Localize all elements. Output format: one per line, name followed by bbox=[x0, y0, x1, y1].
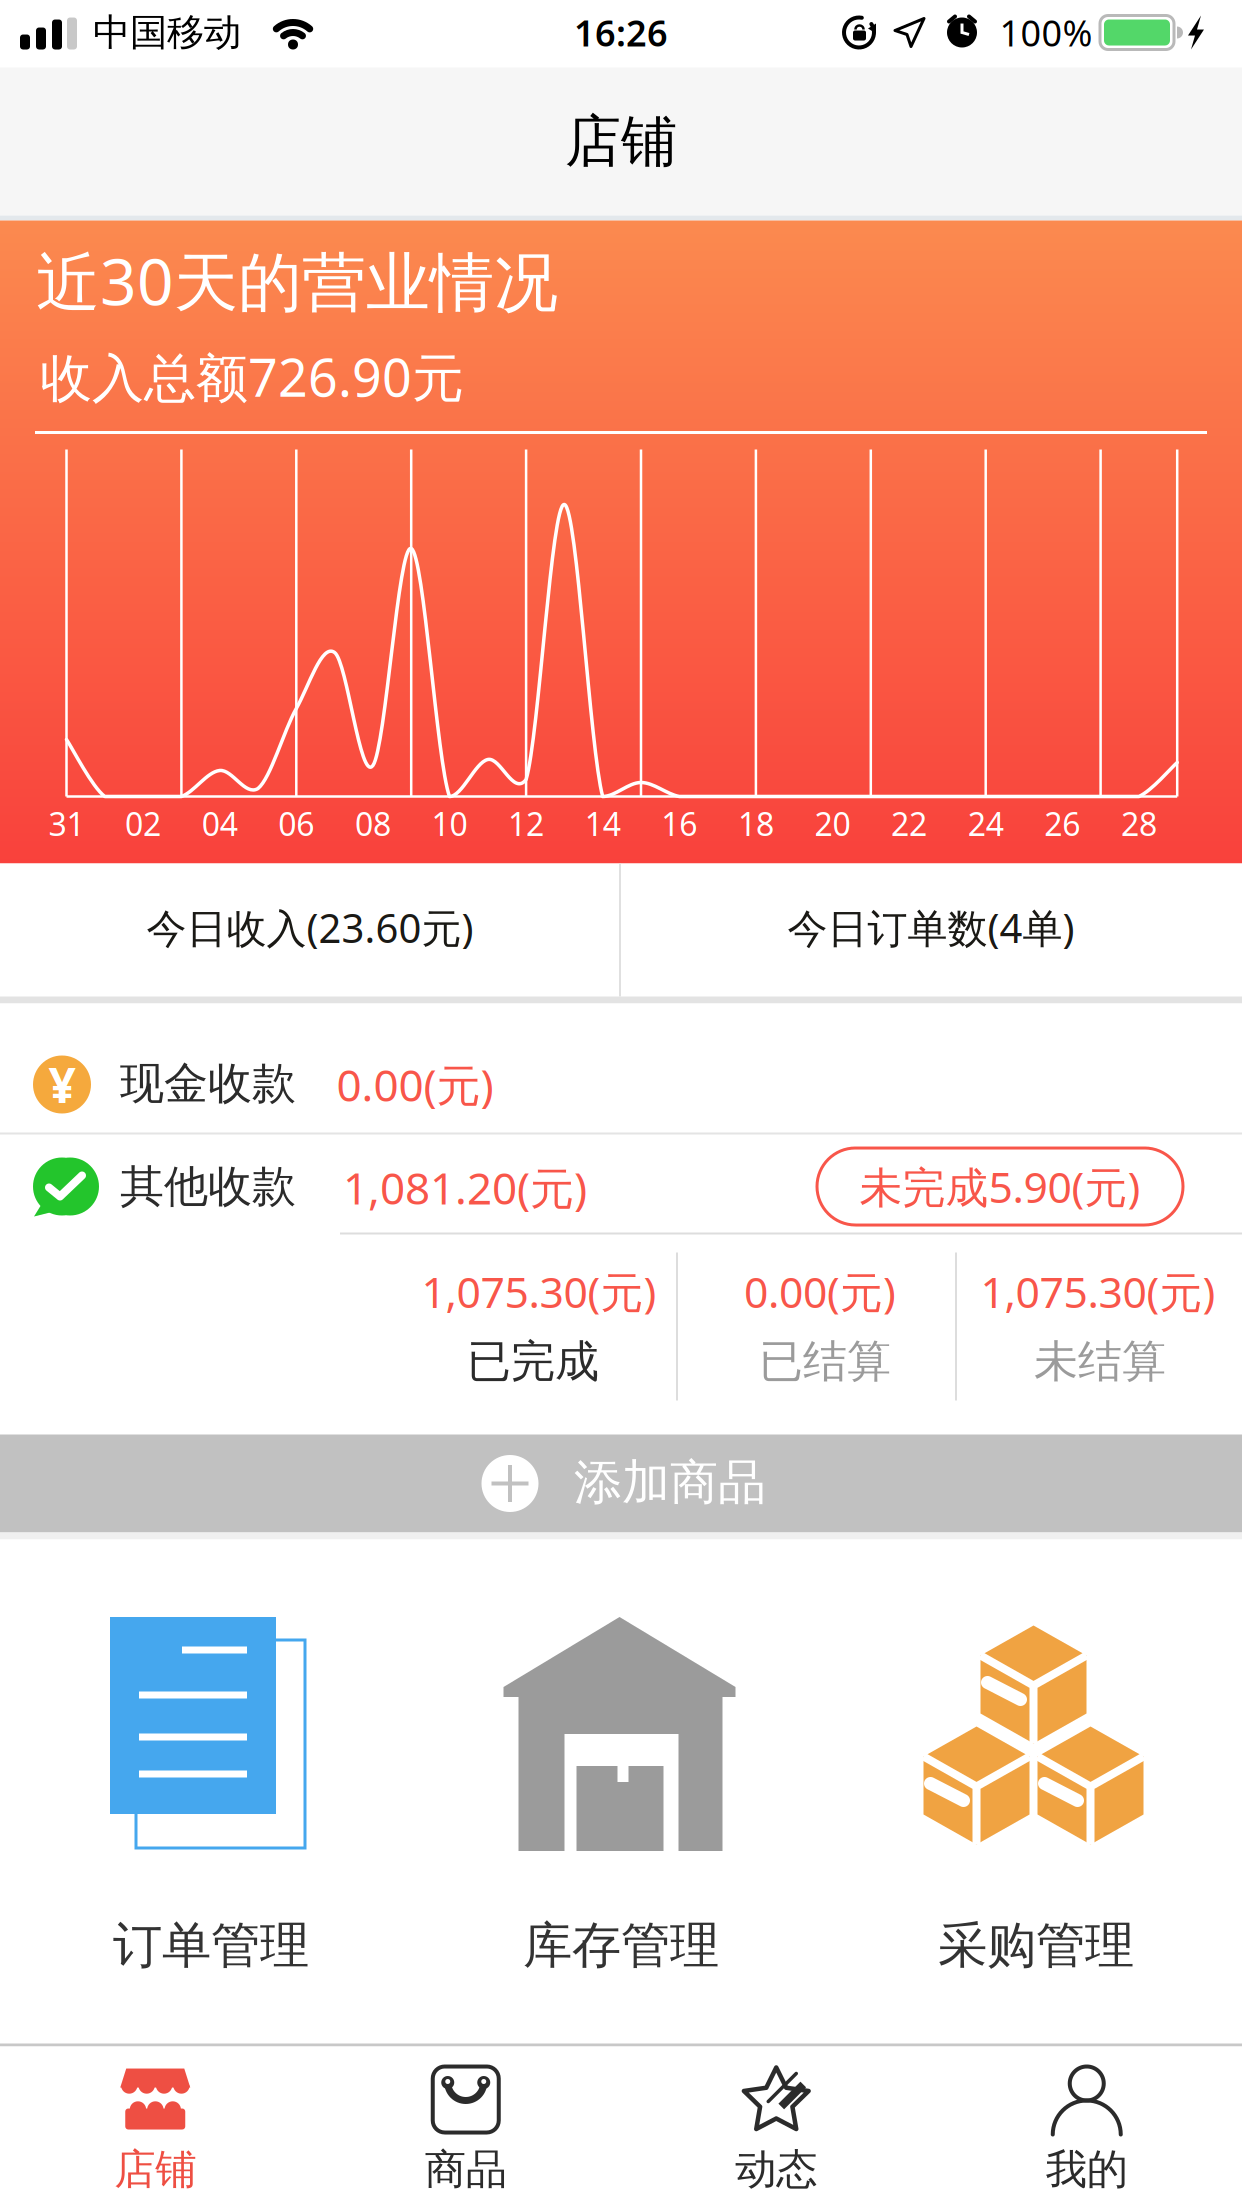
staticText: 已结算 bbox=[759, 1334, 891, 1388]
staticText: 中国移动 bbox=[93, 10, 241, 55]
staticText: 14 bbox=[585, 802, 621, 845]
button[interactable]: 商品 bbox=[310, 2046, 621, 2206]
staticText: ¥ bbox=[48, 1053, 75, 1116]
staticText: 04 bbox=[202, 802, 238, 845]
staticText: 库存管理 bbox=[523, 1915, 719, 1976]
button[interactable]: 库存管理 bbox=[414, 1539, 828, 2043]
staticText: 08 bbox=[355, 802, 391, 845]
staticText: 已完成 bbox=[467, 1334, 599, 1388]
staticText: 其他收款 bbox=[120, 1159, 296, 1213]
button[interactable]: 添加商品 bbox=[0, 1434, 1242, 1532]
staticText: 31 bbox=[48, 802, 84, 845]
staticText: 动态 bbox=[735, 2144, 817, 2195]
staticText: 18 bbox=[738, 802, 774, 845]
staticText: 1,081.20(元) bbox=[343, 1158, 587, 1217]
button[interactable]: 未完成5.90(元) bbox=[817, 1148, 1183, 1225]
staticText: 06 bbox=[278, 802, 314, 845]
staticText: 未完成5.90(元) bbox=[859, 1158, 1140, 1215]
button[interactable]: 我的 bbox=[931, 2046, 1242, 2206]
staticText: 100% bbox=[999, 9, 1092, 56]
staticText: 今日收入(23.60元) bbox=[146, 901, 473, 954]
staticText: 22 bbox=[891, 802, 927, 845]
staticText: 16 bbox=[661, 802, 697, 845]
staticText: 26 bbox=[1044, 802, 1080, 845]
button[interactable]: 订单管理 bbox=[0, 1539, 414, 2043]
staticText: 0.00(元) bbox=[744, 1263, 896, 1320]
staticText: 0.00(元) bbox=[336, 1055, 493, 1114]
button[interactable]: 店铺 bbox=[0, 2046, 310, 2206]
staticText: 订单管理 bbox=[113, 1915, 309, 1976]
staticText: 16:26 bbox=[574, 9, 668, 56]
staticText: 20 bbox=[814, 802, 850, 845]
staticText: 收入总额726.90元 bbox=[40, 342, 464, 411]
staticText: 02 bbox=[125, 802, 161, 845]
staticText: 未结算 bbox=[1034, 1334, 1166, 1388]
staticText: 我的 bbox=[1046, 2144, 1128, 2195]
staticText: 店铺 bbox=[565, 107, 677, 176]
staticText: 28 bbox=[1121, 802, 1157, 845]
staticText: 1,075.30(元) bbox=[980, 1263, 1215, 1320]
staticText: 近30天的营业情况 bbox=[36, 238, 558, 323]
staticText: 商品 bbox=[425, 2144, 507, 2195]
staticText: 24 bbox=[968, 802, 1004, 845]
staticText: 12 bbox=[508, 802, 544, 845]
staticText: 店铺 bbox=[114, 2144, 196, 2195]
staticText: 添加商品 bbox=[574, 1453, 766, 1512]
staticText: 采购管理 bbox=[938, 1915, 1134, 1976]
button[interactable]: 动态 bbox=[621, 2046, 931, 2206]
button[interactable]: 采购管理 bbox=[828, 1539, 1242, 2043]
staticText: 现金收款 bbox=[120, 1056, 296, 1110]
staticText: 今日订单数(4单) bbox=[787, 901, 1074, 954]
staticText: 1,075.30(元) bbox=[421, 1263, 656, 1320]
staticText: 10 bbox=[431, 802, 467, 845]
